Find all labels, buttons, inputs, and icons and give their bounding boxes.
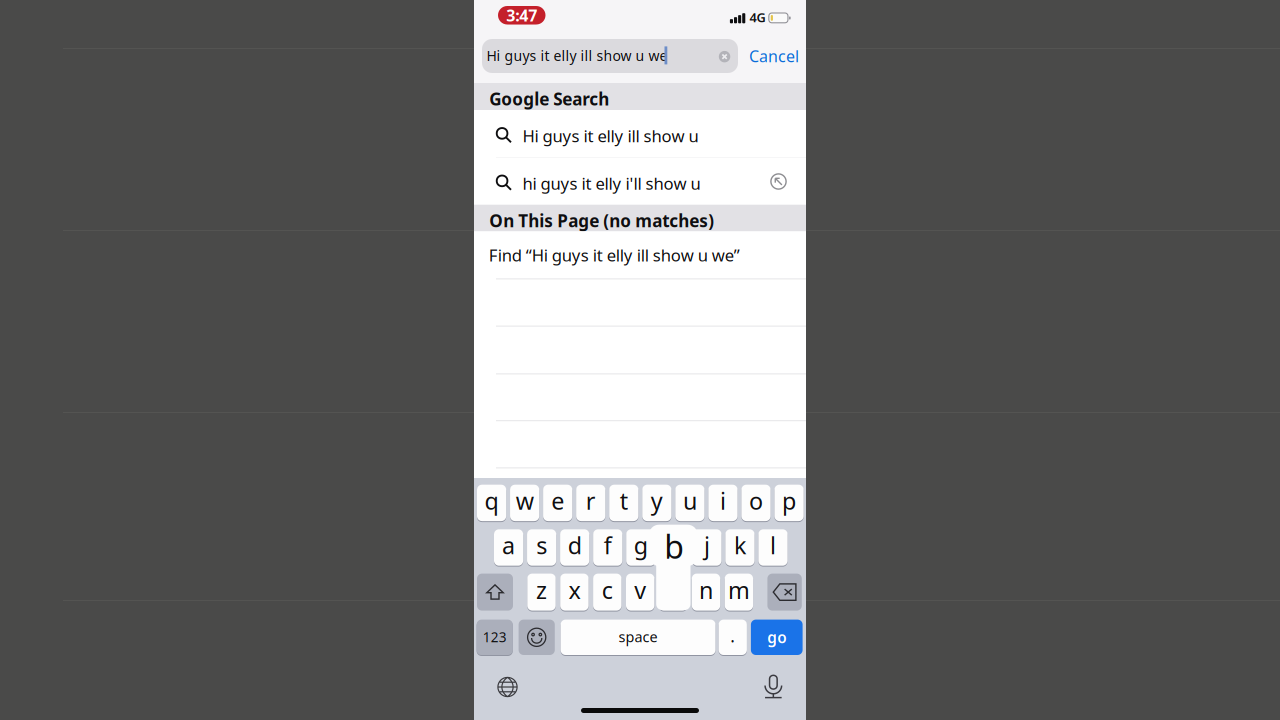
staticText: m: [728, 574, 750, 606]
button[interactable]: Cancel: [748, 39, 800, 73]
button[interactable]: Emoji: [519, 620, 555, 655]
staticText: l: [770, 529, 776, 561]
staticText: k: [734, 529, 746, 561]
staticText: b: [664, 525, 684, 568]
staticText: j: [704, 529, 710, 561]
button[interactable]: e: [543, 485, 572, 521]
staticText: 4G: [749, 9, 765, 26]
button[interactable]: h: [659, 529, 688, 566]
button[interactable]: space: [561, 620, 715, 655]
staticText: o: [749, 485, 763, 517]
button[interactable]: u: [675, 485, 704, 521]
staticText: r: [586, 485, 596, 517]
button[interactable]: .: [719, 620, 747, 655]
staticText: w: [516, 485, 534, 517]
staticText: a: [502, 529, 515, 561]
staticText: e: [551, 485, 564, 517]
staticText: space: [619, 627, 658, 646]
button[interactable]: Clear text: [719, 51, 730, 62]
staticText: hi guys it elly i'll show u: [523, 172, 701, 195]
button[interactable]: v: [626, 574, 654, 611]
staticText: n: [699, 574, 713, 606]
button[interactable]: f: [593, 529, 622, 566]
button[interactable]: Delete: [767, 574, 802, 611]
staticText: .: [730, 624, 735, 648]
button[interactable]: Dictate: [765, 675, 782, 699]
button[interactable]: l: [758, 529, 788, 566]
button[interactable]: Next keyboard: [494, 674, 520, 700]
staticText: Find “Hi guys it elly ill show u we”: [489, 244, 740, 266]
staticText: h: [667, 529, 681, 561]
staticText: 3:47: [506, 5, 537, 26]
staticText: Hi guys it elly ill show u: [523, 124, 699, 147]
button[interactable]: g: [626, 529, 655, 566]
button[interactable]: s: [527, 529, 556, 566]
staticText: y: [651, 485, 663, 517]
button[interactable]: m: [725, 574, 753, 611]
staticText: q: [485, 485, 499, 517]
button[interactable]: n: [692, 574, 720, 611]
staticText: Hi guys it elly ill show u we: [486, 46, 667, 65]
staticText: i: [720, 485, 726, 517]
button[interactable]: k: [725, 529, 754, 566]
button[interactable]: t: [609, 485, 638, 521]
staticText: g: [634, 529, 648, 561]
button[interactable]: j: [692, 529, 721, 566]
staticText: c: [602, 574, 613, 606]
button[interactable]: b: [659, 574, 687, 611]
staticText: z: [536, 574, 547, 606]
staticText: s: [536, 529, 547, 561]
button[interactable]: Shift: [477, 574, 513, 611]
staticText: On This Page (no matches): [489, 209, 714, 232]
staticText: go: [767, 627, 786, 648]
button[interactable]: 123: [477, 620, 513, 655]
button[interactable]: a: [494, 529, 523, 566]
staticText: Google Search: [489, 87, 609, 110]
staticText: v: [634, 574, 646, 606]
staticText: Cancel: [749, 45, 799, 67]
button[interactable]: y: [642, 485, 671, 521]
button[interactable]: o: [741, 485, 771, 521]
button[interactable]: r: [576, 485, 605, 521]
button[interactable]: Find “Hi guys it elly ill show u we”: [474, 231, 806, 278]
staticText: p: [782, 485, 796, 517]
button[interactable]: x: [560, 574, 589, 611]
button[interactable]: go: [751, 620, 803, 655]
button[interactable]: hi guys it elly i'll show u: [474, 157, 806, 205]
button[interactable]: z: [527, 574, 556, 611]
staticText: f: [604, 529, 612, 561]
button[interactable]: c: [593, 574, 621, 611]
button[interactable]: q: [477, 485, 506, 521]
staticText: u: [683, 485, 697, 517]
button[interactable]: i: [708, 485, 737, 521]
button[interactable]: p: [774, 485, 804, 521]
button[interactable]: w: [510, 485, 539, 521]
staticText: x: [568, 574, 580, 606]
button[interactable]: Hi guys it elly ill show u: [474, 110, 806, 157]
staticText: d: [568, 529, 582, 561]
staticText: 123: [483, 628, 507, 646]
staticText: t: [620, 485, 628, 517]
button[interactable]: d: [560, 529, 589, 566]
